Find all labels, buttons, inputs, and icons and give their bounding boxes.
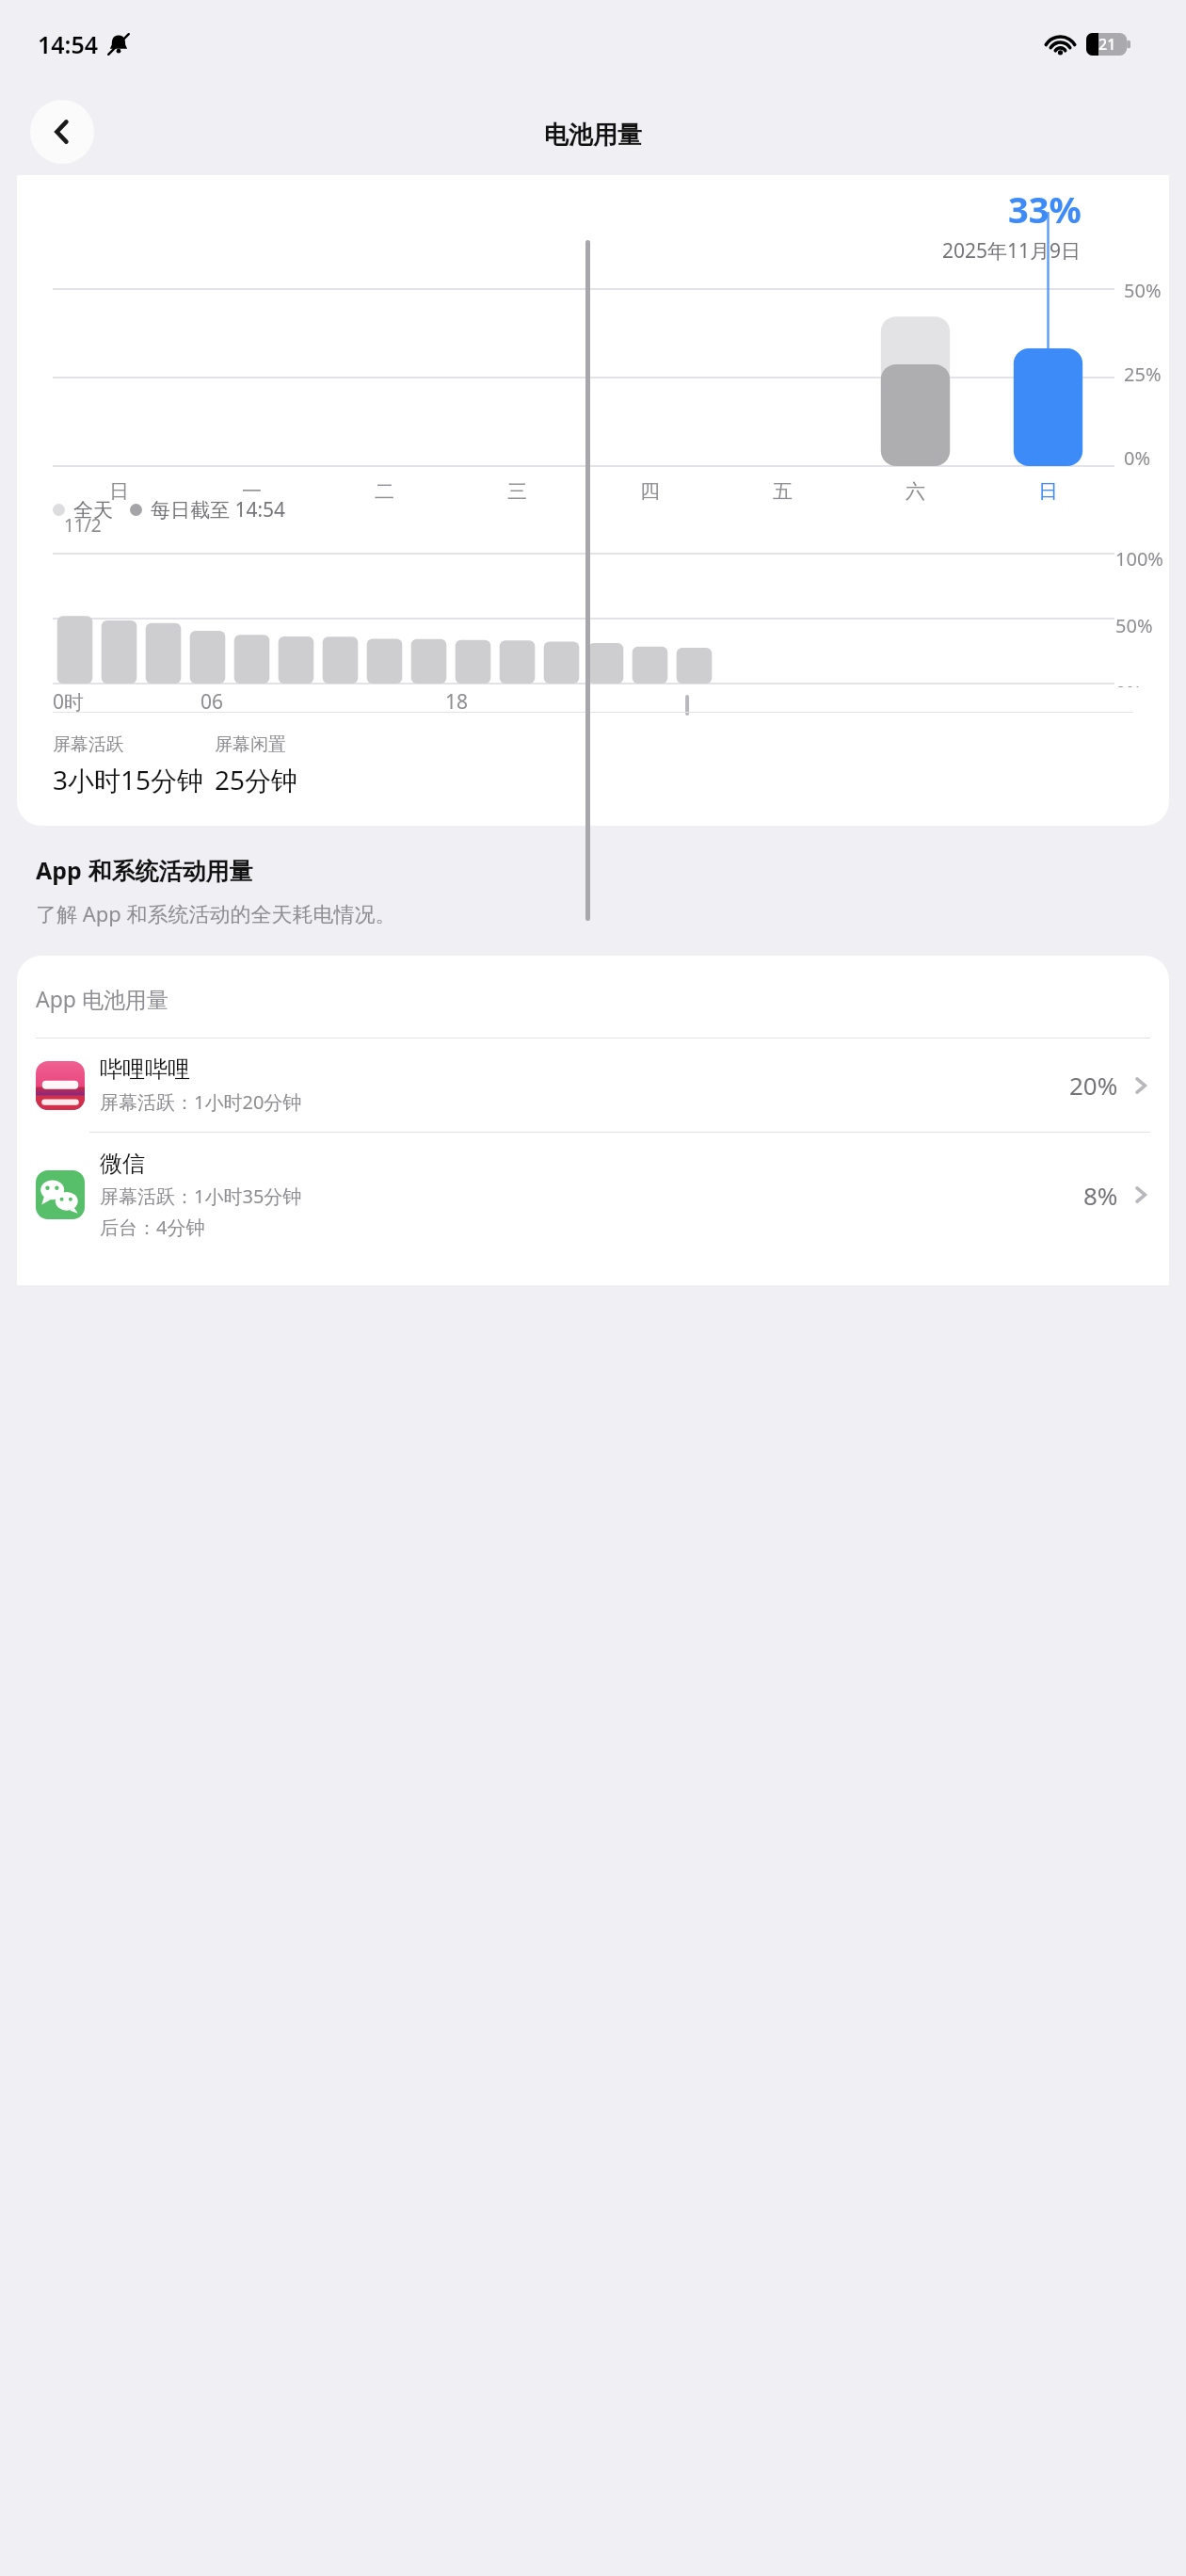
- staticText: 3小时15分钟: [53, 762, 204, 797]
- button[interactable]: Back: [30, 100, 94, 164]
- staticText: 二: [375, 479, 394, 504]
- staticText: 33%: [1008, 185, 1082, 233]
- staticText: App 电池用量: [36, 984, 168, 1013]
- staticText: 25分钟: [215, 762, 298, 797]
- staticText: 屏幕活跃：1小时20分钟: [100, 1089, 302, 1115]
- staticText: 11/2: [64, 513, 102, 538]
- staticText: 后台：4分钟: [100, 1215, 205, 1240]
- staticText: 四: [640, 479, 660, 504]
- staticText: 20%: [1069, 1069, 1118, 1102]
- staticText: 25%: [1124, 362, 1162, 387]
- staticText: 日: [109, 479, 129, 504]
- staticText: 每日截至 14:54: [151, 496, 286, 523]
- staticText: 哔哩哔哩: [100, 1055, 190, 1084]
- staticText: 0%: [1124, 445, 1151, 471]
- staticText: 屏幕闲置: [215, 733, 286, 756]
- staticText: 06: [200, 688, 224, 716]
- staticText: 100%: [1115, 546, 1163, 572]
- staticText: App 和系统活动用量: [36, 854, 253, 886]
- staticText: 2025年11月9日: [942, 237, 1082, 265]
- staticText: 50%: [1115, 613, 1153, 638]
- staticText: 8%: [1083, 1179, 1118, 1212]
- staticText: 三: [507, 479, 527, 504]
- staticText: 0时: [53, 688, 85, 716]
- staticText: 全天: [73, 498, 113, 523]
- staticText: 屏幕活跃: [53, 733, 124, 756]
- staticText: 日: [1038, 479, 1058, 504]
- staticText: 屏幕活跃：1小时35分钟: [100, 1183, 302, 1209]
- staticText: 六: [906, 479, 925, 504]
- staticText: 14:54: [38, 28, 99, 60]
- button[interactable]: 微信: [17, 1133, 1169, 1257]
- staticText: 21: [1098, 34, 1116, 55]
- staticText: 五: [773, 479, 793, 504]
- button[interactable]: 哔哩哔哩: [17, 1038, 1169, 1132]
- staticText: 微信: [100, 1150, 145, 1178]
- staticText: 50%: [1124, 278, 1162, 303]
- staticText: 电池用量: [544, 120, 642, 151]
- staticText: 一: [242, 479, 262, 504]
- staticText: 18: [445, 688, 469, 716]
- staticText: 了解 App 和系统活动的全天耗电情况。: [36, 899, 396, 927]
